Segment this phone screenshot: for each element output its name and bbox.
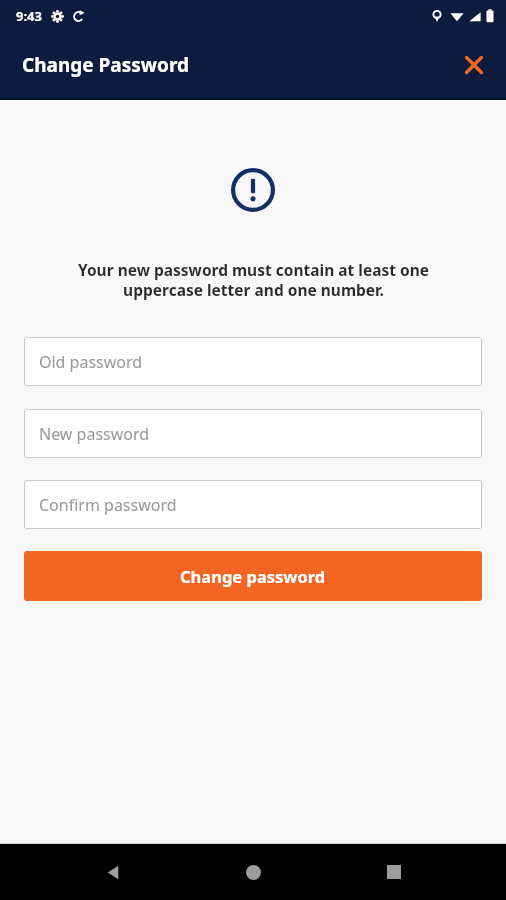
staticText: New password xyxy=(39,423,150,445)
button[interactable]: New password xyxy=(24,409,482,458)
button[interactable]: Home xyxy=(225,844,281,900)
button[interactable]: Confirm password xyxy=(24,480,482,529)
staticText: Change password xyxy=(180,565,326,587)
staticText: Your new password must contain at least … xyxy=(78,259,429,301)
button[interactable]: Change password xyxy=(24,551,482,601)
button[interactable]: Old password xyxy=(24,337,482,386)
button[interactable]: Back xyxy=(85,844,141,900)
staticText: 9:43 xyxy=(16,7,42,25)
staticText: Old password xyxy=(39,351,143,373)
button[interactable]: Close xyxy=(452,43,496,87)
staticText: Confirm password xyxy=(39,494,177,516)
staticText: Change Password xyxy=(22,52,190,78)
button[interactable]: Recent apps xyxy=(366,844,422,900)
